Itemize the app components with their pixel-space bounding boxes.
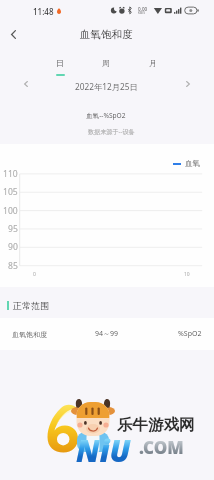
staticText: .COM [139, 436, 184, 459]
staticText: 90 [8, 241, 18, 253]
staticText: 周 [102, 58, 110, 68]
button[interactable]: Back [0, 21, 26, 47]
staticText: 月 [149, 58, 157, 68]
button[interactable]: 周 [89, 54, 123, 78]
staticText: NiU [76, 430, 131, 471]
staticText: 105 [3, 186, 18, 198]
staticText: 乐牛游戏网 [117, 415, 195, 435]
staticText: 10 [184, 271, 190, 278]
staticText: KB/S [138, 11, 145, 15]
button[interactable]: Previous day [18, 76, 34, 92]
staticText: 0 [33, 271, 36, 278]
staticText: 0.00 [138, 6, 148, 12]
staticText: 11:48 [33, 6, 54, 17]
button[interactable]: 日 [43, 54, 77, 78]
staticText: 血氧饱和度 [12, 330, 47, 339]
staticText: 95 [8, 223, 18, 235]
button[interactable]: Next day [180, 76, 196, 92]
button[interactable]: 月 [136, 54, 170, 78]
staticText: 100 [3, 205, 18, 217]
staticText: 血氧饱和度 [80, 28, 133, 41]
staticText: 2022年12月25日 [75, 81, 138, 92]
staticText: %SpO2 [178, 329, 202, 339]
staticText: 血氧--%SpO2 [86, 111, 126, 120]
staticText: 正常范围 [13, 300, 49, 311]
staticText: 85 [8, 260, 18, 272]
button[interactable]: 血氧饱和度 [0, 318, 214, 350]
staticText: 数据来源于--设备 [88, 127, 135, 135]
staticText: 94～99 [95, 329, 119, 339]
staticText: 日 [56, 58, 64, 68]
staticText: 110 [3, 168, 18, 180]
staticText: 血氧 [185, 159, 200, 168]
